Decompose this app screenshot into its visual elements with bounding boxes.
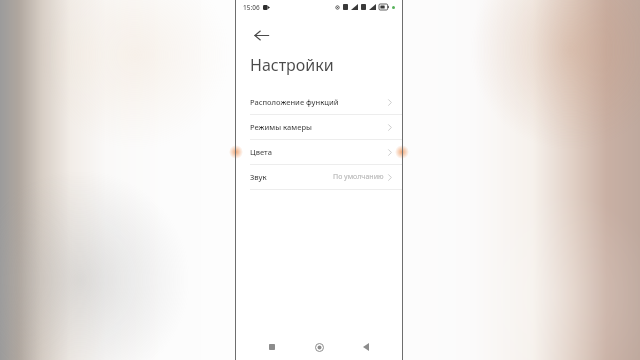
button[interactable]: Home	[308, 336, 330, 358]
button[interactable]: Recents	[261, 336, 283, 358]
button[interactable]: Расположение функций	[236, 90, 402, 114]
staticText: 15:06	[243, 3, 260, 12]
button[interactable]: Back	[355, 336, 377, 358]
staticText: Звук	[250, 172, 267, 182]
button[interactable]: Звук	[236, 165, 402, 189]
button[interactable]: Цвета	[236, 140, 402, 164]
staticText: Режимы камеры	[250, 122, 312, 132]
button[interactable]: Режимы камеры	[236, 115, 402, 139]
staticText: Цвета	[250, 147, 272, 157]
button[interactable]: Back	[244, 18, 278, 52]
staticText: По умолчанию	[333, 172, 384, 182]
staticText: Настройки	[250, 54, 334, 76]
staticText: Расположение функций	[250, 97, 339, 107]
